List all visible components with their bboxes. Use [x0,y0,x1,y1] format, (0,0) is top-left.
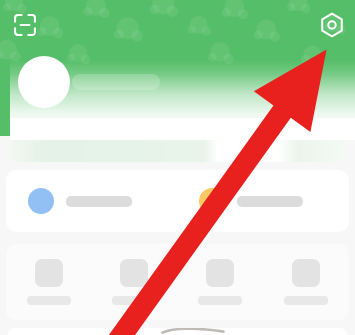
button[interactable] [177,259,263,305]
button[interactable] [91,259,177,305]
button[interactable] [10,132,345,162]
button[interactable] [177,178,349,224]
button[interactable] [263,259,349,305]
button[interactable]: Profile [18,56,70,108]
button[interactable] [6,178,177,224]
button[interactable] [6,259,91,305]
button[interactable]: Scan [8,8,42,42]
button[interactable]: Settings [315,8,349,42]
button[interactable] [8,328,347,335]
